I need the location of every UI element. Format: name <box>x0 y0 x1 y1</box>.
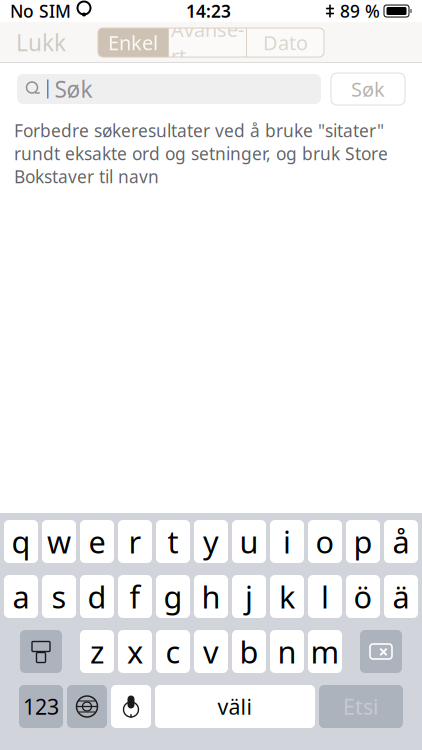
staticText: u <box>239 521 258 562</box>
button[interactable]: v <box>194 630 228 673</box>
button[interactable]: Etsi <box>319 685 403 728</box>
staticText: t <box>167 521 178 562</box>
button[interactable]: t <box>156 520 190 563</box>
button[interactable]: q <box>4 520 38 563</box>
staticText: å <box>392 521 409 562</box>
button[interactable]: j <box>232 575 266 618</box>
button[interactable]: r <box>118 520 152 563</box>
button[interactable]: n <box>270 630 304 673</box>
button[interactable]: z <box>80 630 114 673</box>
staticText: d <box>87 576 106 617</box>
staticText: e <box>88 521 105 562</box>
staticText: z <box>90 631 104 672</box>
staticText: r <box>128 521 141 562</box>
button[interactable]: l <box>308 575 342 618</box>
staticText: ö <box>353 576 372 617</box>
staticText: l <box>321 576 329 617</box>
button[interactable]: Lukk <box>0 22 82 63</box>
staticText: v <box>203 631 219 672</box>
button[interactable]: väli <box>155 685 315 728</box>
staticText: c <box>165 631 180 672</box>
button[interactable]: y <box>194 520 228 563</box>
staticText: Dato <box>263 29 308 56</box>
staticText: m <box>310 631 339 672</box>
button[interactable]: a <box>4 575 38 618</box>
button[interactable]: h <box>194 575 228 618</box>
staticText: k <box>279 576 295 617</box>
staticText: 89 % <box>340 0 380 22</box>
staticText: Etsi <box>343 692 379 721</box>
button[interactable]: Dato <box>247 28 324 57</box>
button[interactable]: o <box>308 520 342 563</box>
button[interactable]: Enkel <box>98 28 168 57</box>
staticText: j <box>245 576 253 617</box>
button[interactable]: Søk <box>331 73 405 105</box>
staticText: Søk <box>54 74 92 104</box>
button[interactable]: k <box>270 575 304 618</box>
button[interactable]: Delete <box>360 630 402 673</box>
button[interactable]: w <box>42 520 76 563</box>
staticText: p <box>353 521 372 562</box>
staticText: ä <box>392 576 409 617</box>
button[interactable]: s <box>42 575 76 618</box>
staticText: f <box>129 576 140 617</box>
staticText: y <box>203 521 219 562</box>
button[interactable]: g <box>156 575 190 618</box>
staticText: n <box>277 631 296 672</box>
staticText: h <box>201 576 220 617</box>
button[interactable]: ä <box>384 575 418 618</box>
staticText: Lukk <box>16 27 66 57</box>
staticText: w <box>47 521 71 562</box>
staticText: b <box>239 631 258 672</box>
button[interactable]: u <box>232 520 266 563</box>
staticText: Forbedre søkeresultater ved å bruke "sit… <box>14 119 388 188</box>
button[interactable]: å <box>384 520 418 563</box>
staticText: a <box>12 576 29 617</box>
staticText: 14:23 <box>186 0 231 22</box>
button[interactable]: Dictation <box>111 685 151 728</box>
button[interactable]: Avansert <box>169 28 246 57</box>
staticText: No SIM <box>10 0 71 22</box>
button[interactable]: c <box>156 630 190 673</box>
button[interactable]: e <box>80 520 114 563</box>
button[interactable]: Next keyboard <box>67 685 107 728</box>
staticText: g <box>163 576 182 617</box>
staticText: o <box>315 521 334 562</box>
staticText: Avansert <box>171 16 244 69</box>
button[interactable]: d <box>80 575 114 618</box>
button[interactable]: 123 <box>19 685 63 728</box>
staticText: Søk <box>351 76 385 102</box>
button[interactable]: ö <box>346 575 380 618</box>
button[interactable]: Shift <box>20 630 62 673</box>
button[interactable]: b <box>232 630 266 673</box>
button[interactable]: p <box>346 520 380 563</box>
button[interactable]: m <box>308 630 342 673</box>
staticText: q <box>11 521 30 562</box>
staticText: Enkel <box>108 29 158 56</box>
staticText: väli <box>217 692 252 721</box>
button[interactable]: f <box>118 575 152 618</box>
staticText: s <box>51 576 66 617</box>
button[interactable]: x <box>118 630 152 673</box>
staticText: × <box>378 640 388 663</box>
staticText: i <box>283 521 291 562</box>
staticText: 123 <box>23 692 59 721</box>
staticText: x <box>127 631 143 672</box>
button[interactable]: i <box>270 520 304 563</box>
